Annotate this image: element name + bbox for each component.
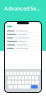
staticText: Advanced Search — [4, 5, 41, 12]
